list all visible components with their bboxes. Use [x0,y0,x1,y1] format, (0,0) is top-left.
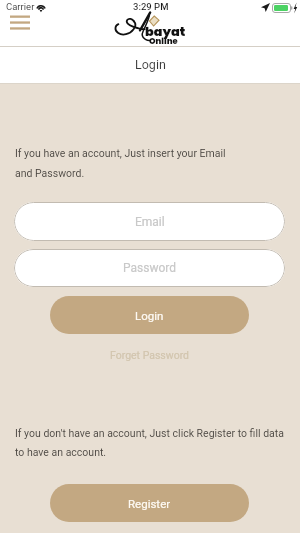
staticText: Password [123,261,177,275]
staticText: Email [135,215,165,229]
button[interactable]: Email [14,202,285,241]
button[interactable]: Forget Password [102,345,198,365]
staticText: Login [135,309,164,322]
staticText: Online [149,35,178,47]
staticText: Carrier [6,1,35,12]
button[interactable]: Register [50,484,249,522]
button[interactable]: Login [50,296,249,334]
staticText: Forget Password [110,349,190,361]
button[interactable]: Open navigation menu [4,12,36,34]
staticText: Register [128,497,171,510]
staticText: Login [135,57,166,72]
staticText: If you don't have an account, Just click… [15,427,284,459]
staticText: bayat [145,23,186,41]
staticText: If you have an account, Just insert your… [15,147,226,179]
staticText: 3:29 PM [133,1,169,12]
button[interactable]: Password [14,249,285,287]
